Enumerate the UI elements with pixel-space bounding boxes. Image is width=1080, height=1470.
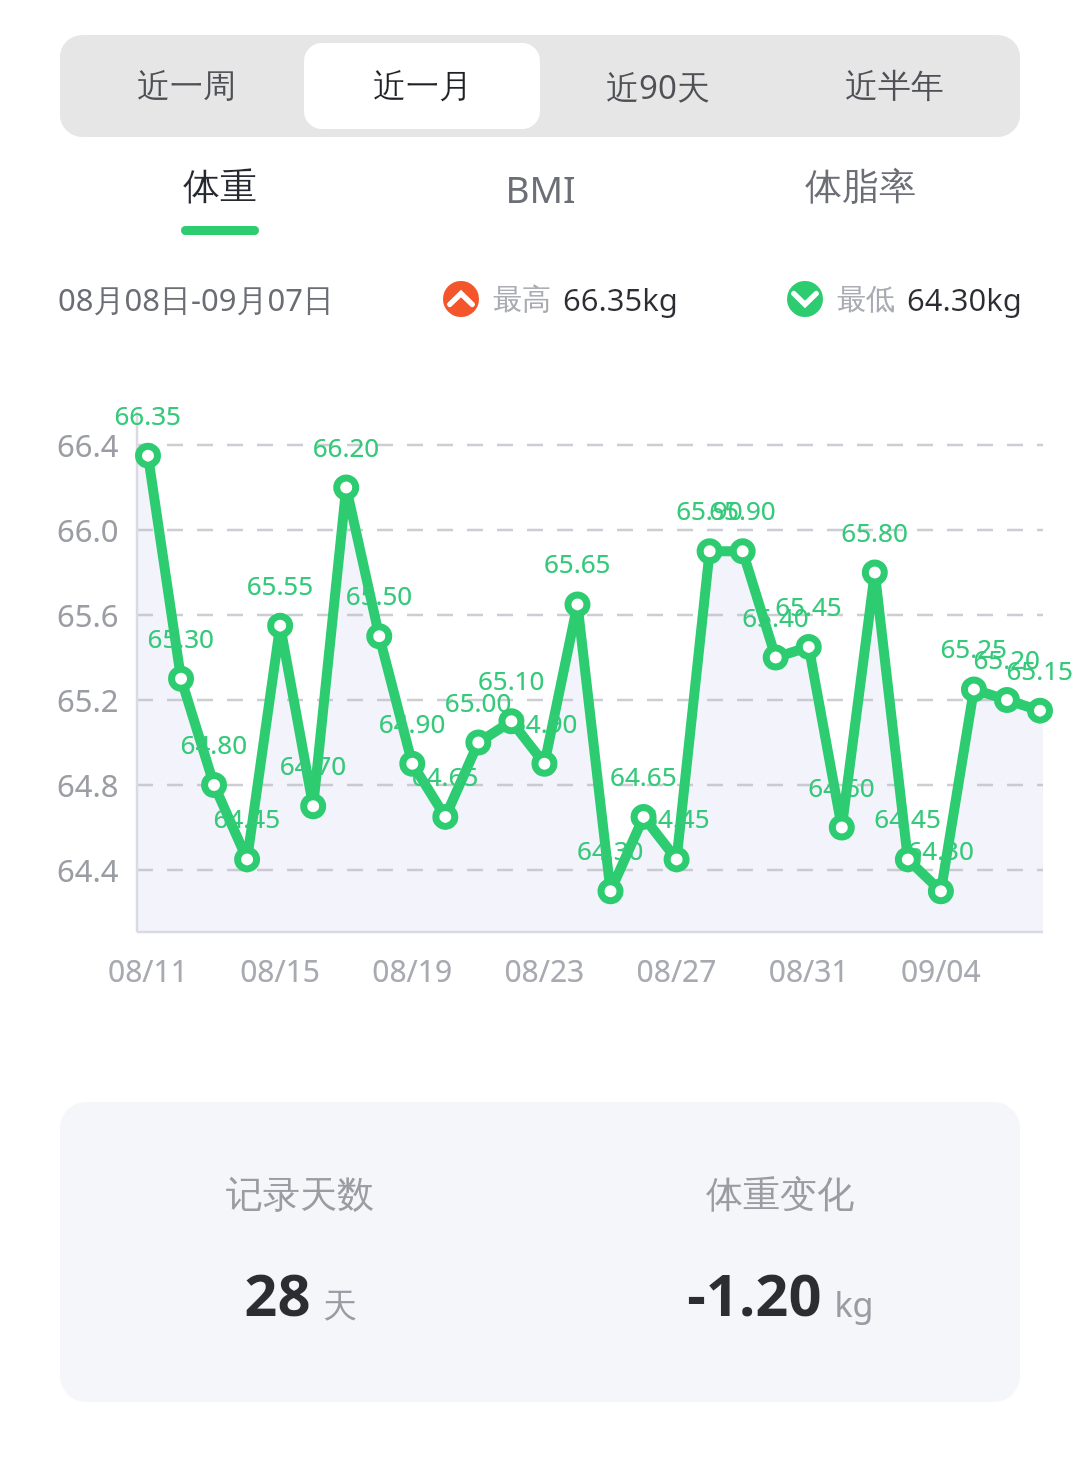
button[interactable]: 记录天数 — [60, 1171, 540, 1333]
button[interactable]: 近半年 — [776, 43, 1012, 129]
button[interactable]: 体重变化 — [540, 1171, 1020, 1333]
staticText: 体重 — [183, 163, 257, 210]
button[interactable]: BMI — [380, 163, 700, 238]
button[interactable]: 体脂率 — [700, 163, 1020, 235]
other: Lowest — [787, 281, 823, 317]
staticText: 近90天 — [606, 64, 710, 109]
staticText: 体脂率 — [805, 163, 916, 210]
staticText: 最高 — [493, 281, 551, 318]
staticText: 近一月 — [373, 65, 472, 107]
staticText: -1.20 — [687, 1254, 822, 1333]
staticText: 28 — [244, 1254, 311, 1333]
staticText: 近半年 — [845, 65, 944, 107]
button[interactable]: 近90天 — [540, 43, 776, 129]
staticText: 64.30kg — [907, 278, 1022, 320]
staticText: 近一周 — [137, 65, 236, 107]
other: Highest — [443, 281, 479, 317]
button[interactable]: 近一周 — [68, 43, 304, 129]
staticText: 天 — [323, 1284, 357, 1327]
staticText: 最低 — [837, 281, 895, 318]
staticText: 体重变化 — [706, 1171, 854, 1218]
button[interactable]: 体重 — [60, 163, 380, 235]
staticText: 66.35kg — [563, 278, 678, 320]
button[interactable]: 近一月 — [304, 43, 540, 129]
staticText: BMI — [505, 163, 576, 213]
staticText: 08月08日-09月07日 — [58, 278, 334, 320]
staticText: 记录天数 — [226, 1171, 374, 1218]
staticText: kg — [834, 1281, 874, 1327]
